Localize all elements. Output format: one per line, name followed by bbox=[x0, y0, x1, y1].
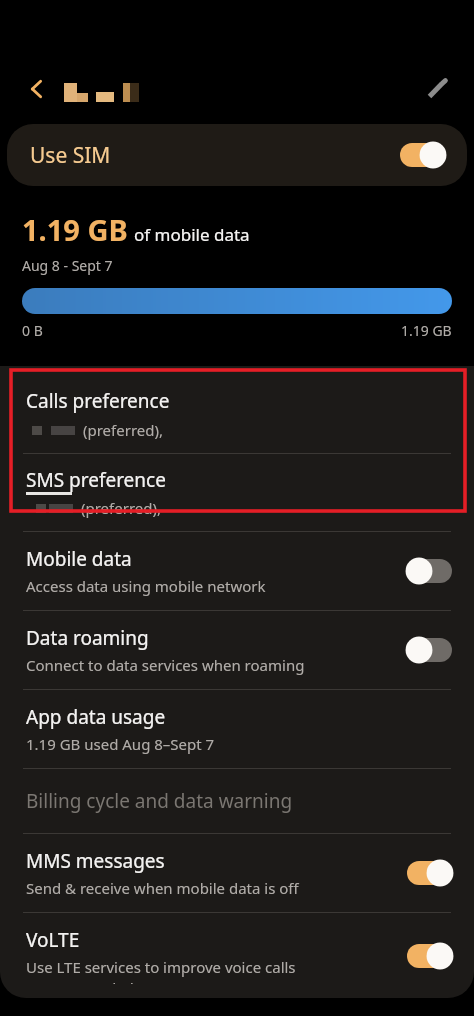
staticText: Calls preference bbox=[26, 388, 170, 414]
button[interactable]: Mobile data bbox=[0, 532, 474, 610]
staticText: (preferred), bbox=[83, 420, 163, 440]
staticText: Use LTE services to improve voice calls … bbox=[26, 957, 296, 984]
button[interactable]: App data usage bbox=[0, 690, 474, 768]
button[interactable]: Data roaming bbox=[0, 611, 474, 689]
staticText: Send & receive when mobile data is off bbox=[26, 878, 299, 898]
staticText: 0 B bbox=[22, 321, 43, 340]
button[interactable]: MMS messages bbox=[0, 834, 474, 912]
staticText: Use SIM bbox=[30, 141, 111, 170]
staticText: Access data using mobile network bbox=[26, 576, 266, 596]
staticText: 1.19 GB used Aug 8–Sept 7 bbox=[26, 734, 215, 754]
staticText: MMS messages bbox=[26, 848, 165, 874]
button[interactable]: Billing cycle and data warning bbox=[0, 769, 474, 833]
staticText: (preferred), bbox=[81, 498, 161, 518]
staticText: Data roaming bbox=[26, 625, 149, 651]
button[interactable]: VoLTE bbox=[0, 913, 474, 998]
staticText: 1.19 GB bbox=[401, 321, 452, 340]
button[interactable]: Use SIM bbox=[7, 124, 467, 186]
staticText: Billing cycle and data warning bbox=[26, 788, 293, 814]
staticText: SMS preference bbox=[26, 467, 166, 493]
button[interactable]: Edit SIM name bbox=[416, 68, 458, 110]
button[interactable]: SMS preference bbox=[0, 454, 474, 531]
staticText: Connect to data services when roaming bbox=[26, 655, 305, 675]
button[interactable]: Back bbox=[16, 68, 58, 110]
staticText: VoLTE bbox=[26, 927, 80, 953]
staticText: 1.19 GB bbox=[22, 210, 128, 249]
staticText: App data usage bbox=[26, 704, 166, 730]
staticText: Mobile data bbox=[26, 546, 132, 572]
staticText: Aug 8 - Sept 7 bbox=[22, 256, 113, 275]
staticText: of mobile data bbox=[134, 223, 250, 246]
button[interactable]: Calls preference bbox=[0, 375, 474, 453]
